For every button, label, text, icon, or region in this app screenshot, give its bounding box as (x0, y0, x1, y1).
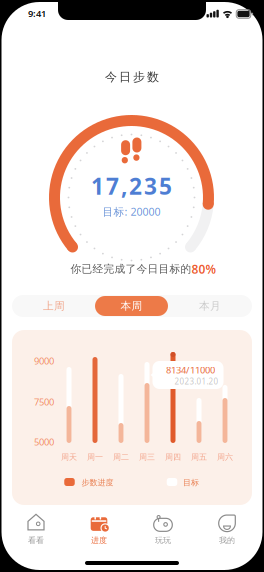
staticText: 进度 (91, 535, 107, 545)
staticText: 周四 (165, 452, 181, 462)
staticText: 上周 (43, 299, 65, 312)
staticText: 80% (191, 261, 216, 277)
staticText: 1 7 , 2 3 5 (91, 171, 172, 201)
button[interactable]: 进度 (68, 507, 130, 549)
button[interactable]: 本周 (95, 296, 168, 316)
staticText: 周三 (139, 452, 155, 462)
staticText: 我的 (219, 535, 235, 545)
staticText: 周二 (113, 452, 129, 462)
staticText: 看看 (28, 535, 44, 545)
button[interactable]: 玩玩 (132, 507, 194, 549)
staticText: 7500 (34, 396, 54, 408)
staticText: 今 日 步 数 (105, 70, 159, 84)
button[interactable]: 看看 (5, 507, 67, 549)
staticText: 9000 (34, 355, 54, 367)
button[interactable]: 本月 (171, 295, 249, 317)
staticText: 目标: 20000 (102, 204, 160, 219)
button[interactable]: 我的 (196, 507, 258, 549)
staticText: 5000 (34, 436, 54, 448)
staticText: 玩玩 (155, 535, 171, 545)
staticText: 9:41 (28, 7, 46, 20)
staticText: 目标 (183, 478, 199, 487)
staticText: 本月 (199, 299, 221, 312)
button[interactable]: 上周 (15, 295, 93, 317)
staticText: 周一 (87, 452, 103, 462)
staticText: 2023.01.20 (174, 376, 218, 387)
staticText: 步数进度 (81, 478, 113, 487)
staticText: 8134/11000 (166, 364, 215, 376)
staticText: 周五 (191, 452, 207, 462)
staticText: 你已经完成了今日目标的 (70, 262, 191, 275)
staticText: 本周 (120, 299, 142, 312)
staticText: 周天 (61, 452, 77, 462)
staticText: 周六 (217, 452, 233, 462)
